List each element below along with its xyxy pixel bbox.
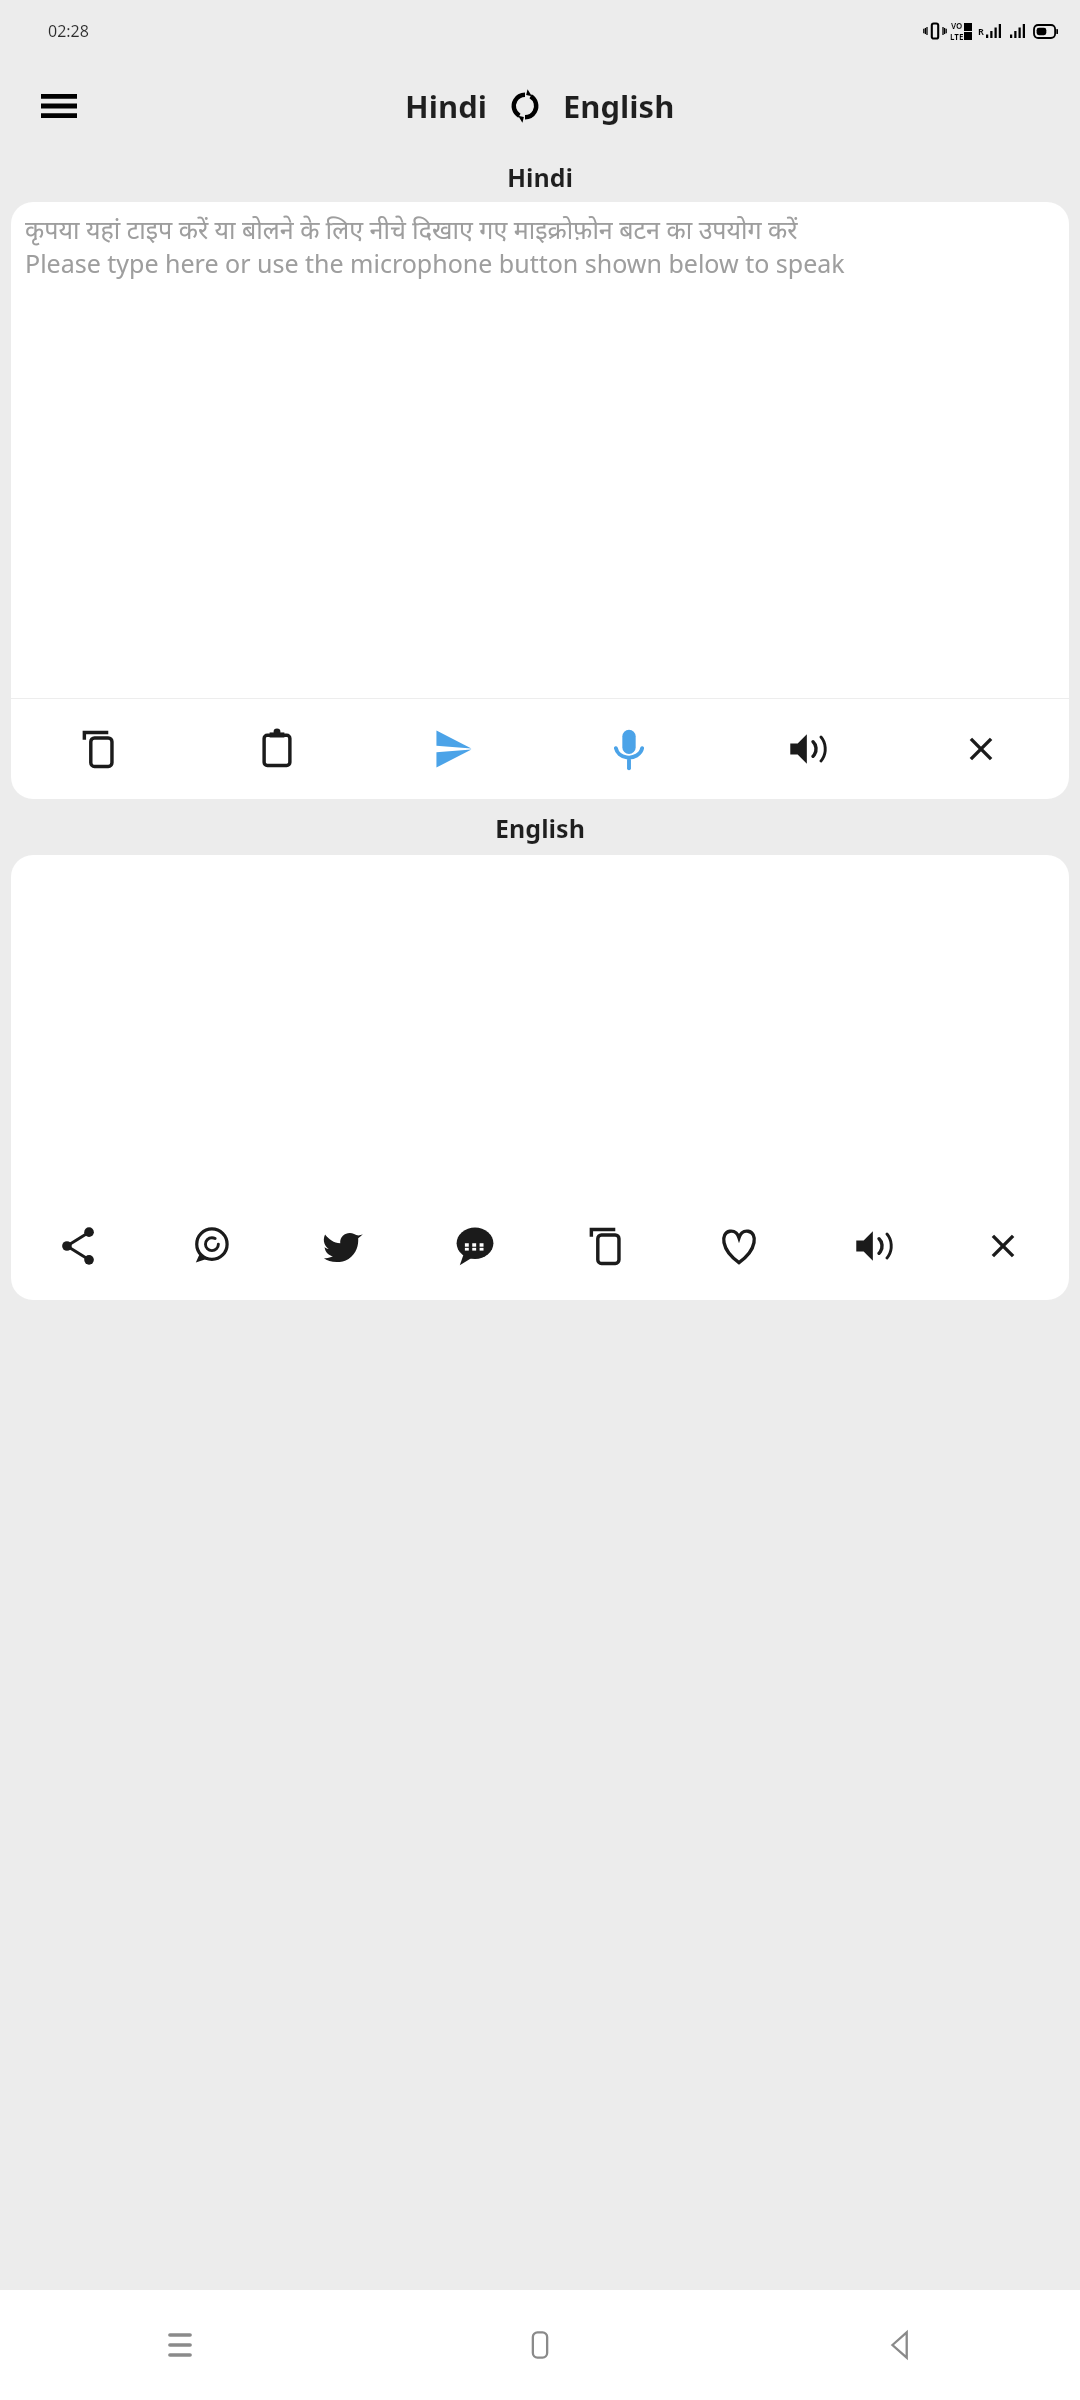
button[interactable]: Menu xyxy=(30,77,88,135)
button[interactable]: Listen xyxy=(717,699,893,799)
staticText: कृपया यहां टाइप करें या बोलने के लिए नीच… xyxy=(25,212,798,246)
staticText: R xyxy=(978,25,984,37)
staticText: VO xyxy=(951,20,963,31)
button[interactable]: Back xyxy=(720,2290,1080,2400)
staticText: 02:28 xyxy=(48,20,89,42)
button[interactable]: English xyxy=(563,85,675,127)
button[interactable]: Recents xyxy=(0,2290,360,2400)
button[interactable]: WhatsApp xyxy=(144,1192,277,1300)
button[interactable]: कृपया यहां टाइप करें या बोलने के लिए नीच… xyxy=(11,202,1069,698)
staticText: Please type here or use the microphone b… xyxy=(25,246,845,280)
button[interactable]: Clear xyxy=(937,1192,1069,1300)
button[interactable]: SMS xyxy=(409,1192,541,1300)
button[interactable]: Share xyxy=(11,1192,144,1300)
button[interactable]: Favourite xyxy=(673,1192,805,1300)
button[interactable]: Paste xyxy=(188,699,365,799)
button[interactable]: Twitter xyxy=(277,1192,409,1300)
button[interactable]: Swap languages xyxy=(503,84,547,128)
button[interactable]: Home xyxy=(360,2290,720,2400)
button[interactable]: Copy xyxy=(541,1192,673,1300)
button[interactable]: Speak xyxy=(541,699,717,799)
button[interactable]: Translate xyxy=(365,699,541,799)
button[interactable]: Listen xyxy=(805,1192,937,1300)
button[interactable]: Hindi xyxy=(405,85,487,127)
staticText: English xyxy=(0,811,1080,845)
staticText: LTE xyxy=(950,31,964,42)
button[interactable]: Copy xyxy=(11,699,188,799)
button[interactable]: Clear xyxy=(893,699,1069,799)
staticText: Hindi xyxy=(0,160,1080,194)
